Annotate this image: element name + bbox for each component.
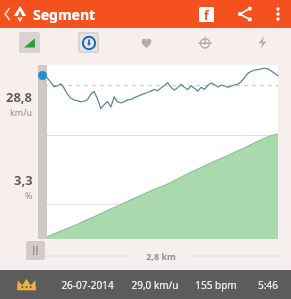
staticText: 155 bpm bbox=[195, 278, 237, 292]
staticText: f bbox=[204, 7, 209, 22]
staticText: km/u bbox=[10, 106, 33, 118]
button[interactable]: Share bbox=[225, 0, 265, 28]
staticText: 5:46 bbox=[258, 278, 278, 292]
staticText: Segment bbox=[33, 5, 96, 24]
button[interactable]: Chart range handle bbox=[26, 241, 45, 260]
staticText: 2,8 km bbox=[146, 250, 176, 262]
button[interactable]: Chart tab bbox=[19, 32, 40, 53]
button[interactable]: Back bbox=[0, 6, 29, 22]
button[interactable]: More options bbox=[265, 0, 291, 28]
button[interactable]: Chart tab bbox=[194, 32, 215, 53]
button[interactable]: Share on Facebook bbox=[187, 0, 225, 28]
button[interactable]: Chart tab bbox=[252, 32, 273, 53]
staticText: 26-07-2014 bbox=[61, 278, 114, 292]
staticText: 28,8 bbox=[6, 88, 33, 106]
button[interactable]: King of the Mountain bbox=[0, 278, 52, 291]
staticText: 29,0 km/u bbox=[131, 278, 179, 292]
staticText: % bbox=[25, 189, 33, 201]
staticText: 3,3 bbox=[14, 171, 33, 189]
button[interactable]: Chart tab bbox=[136, 32, 157, 53]
button[interactable]: Chart tab bbox=[78, 32, 99, 53]
